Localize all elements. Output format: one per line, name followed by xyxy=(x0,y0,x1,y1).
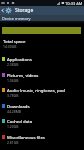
button[interactable]: Miscellaneous files xyxy=(0,132,84,148)
button[interactable]: Applications xyxy=(0,54,84,70)
button[interactable]: Device memory xyxy=(0,15,84,21)
button[interactable]: Cached data xyxy=(0,116,84,132)
staticText: Miscellaneous files xyxy=(7,134,84,140)
staticText: 1.20GB xyxy=(7,124,19,129)
staticText: 10:33 AM xyxy=(65,1,83,6)
staticText: Device memory xyxy=(2,16,31,21)
button[interactable]: Navigate up xyxy=(0,6,14,15)
staticText: Cached data xyxy=(7,118,84,124)
button[interactable]: Audio (music, ringtones, pod xyxy=(0,85,84,101)
staticText: 2.81GB xyxy=(7,140,19,145)
staticText: 1.06GB xyxy=(7,78,19,83)
staticText: Downloads xyxy=(7,103,84,109)
staticText: Total space xyxy=(3,38,26,44)
staticText: 2.38GB xyxy=(7,62,19,67)
staticText: 44.28MB xyxy=(7,109,21,114)
button[interactable]: Pictures, videos xyxy=(0,70,84,86)
staticText: Storage xyxy=(15,7,34,14)
staticText: Applications xyxy=(7,56,84,62)
staticText: Pictures, videos xyxy=(7,72,84,78)
staticText: 3.78GB xyxy=(7,93,19,98)
button[interactable]: Downloads xyxy=(0,101,84,117)
staticText: 14.00GB xyxy=(3,44,17,49)
staticText: Audio (music, ringtones, pod xyxy=(7,87,84,93)
